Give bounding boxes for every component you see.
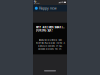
button[interactable]: Happy new (33, 5, 67, 11)
staticText: GENIUS WHEN IT ALL (38, 44, 62, 47)
staticText: DURING SEX? (35, 29, 52, 32)
staticText: THEY'RE PLUGGED INTO A (35, 41, 64, 44)
staticText: COMES DOWN TO IT. (38, 47, 62, 50)
staticText: 9:41 (34, 0, 40, 4)
staticText: BECAUSE DURING SEX (38, 38, 61, 41)
staticText: Happy new (39, 6, 57, 10)
staticText: WHY ARE MEN SMARTER (35, 25, 64, 29)
